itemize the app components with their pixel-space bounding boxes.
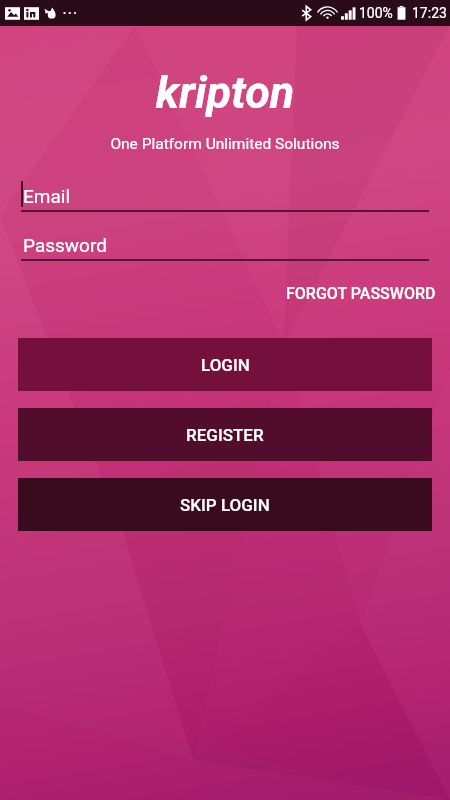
staticText: One Platform Unlimited Solutions <box>0 135 450 153</box>
staticText: REGISTER <box>186 425 264 445</box>
staticText: LOGIN <box>201 355 250 375</box>
staticText: Password <box>23 234 107 256</box>
staticText: kripton <box>0 66 450 119</box>
button[interactable]: SKIP LOGIN <box>18 478 432 531</box>
button[interactable]: FORGOT PASSWORD <box>268 273 450 313</box>
staticText: Email <box>23 185 71 207</box>
staticText: 17:23 <box>412 5 447 21</box>
button[interactable]: LOGIN <box>18 338 432 391</box>
staticText: SKIP LOGIN <box>180 495 270 515</box>
staticText: 100% <box>359 5 393 21</box>
staticText: • • • <box>63 8 77 19</box>
button[interactable]: Password <box>21 229 429 261</box>
button[interactable]: Email <box>21 180 429 212</box>
button[interactable]: REGISTER <box>18 408 432 461</box>
staticText: FORGOT PASSWORD <box>286 284 436 303</box>
